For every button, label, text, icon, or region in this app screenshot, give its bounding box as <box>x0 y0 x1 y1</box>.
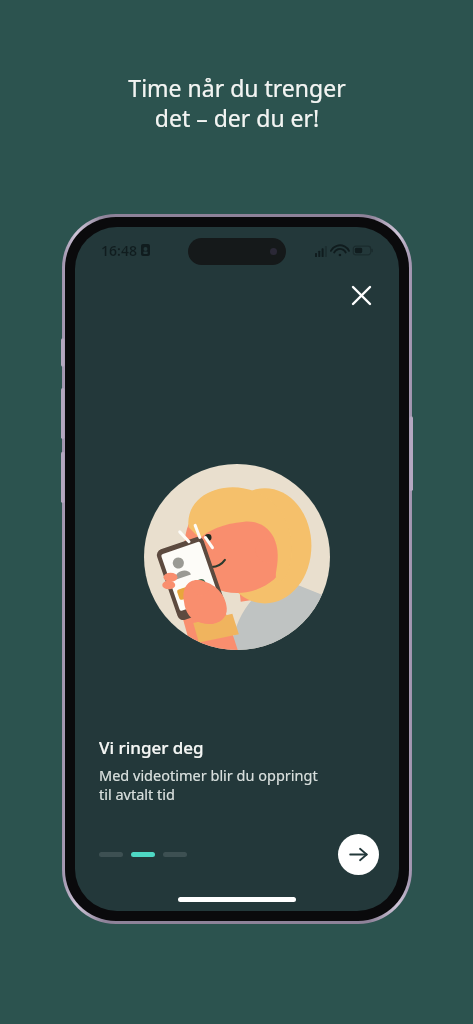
staticText: Vi ringer deg <box>99 736 204 759</box>
button[interactable]: Side <box>163 852 187 857</box>
button[interactable]: Side <box>99 852 123 857</box>
staticText: 16:48 <box>101 241 137 260</box>
button[interactable]: Neste <box>338 834 379 875</box>
staticText: Med videotimer blir du oppringt til avta… <box>99 765 318 804</box>
staticText: Time når du trenger det – der du er! <box>128 72 346 134</box>
button[interactable]: Side <box>131 852 155 857</box>
button[interactable]: Lukk <box>341 275 381 315</box>
